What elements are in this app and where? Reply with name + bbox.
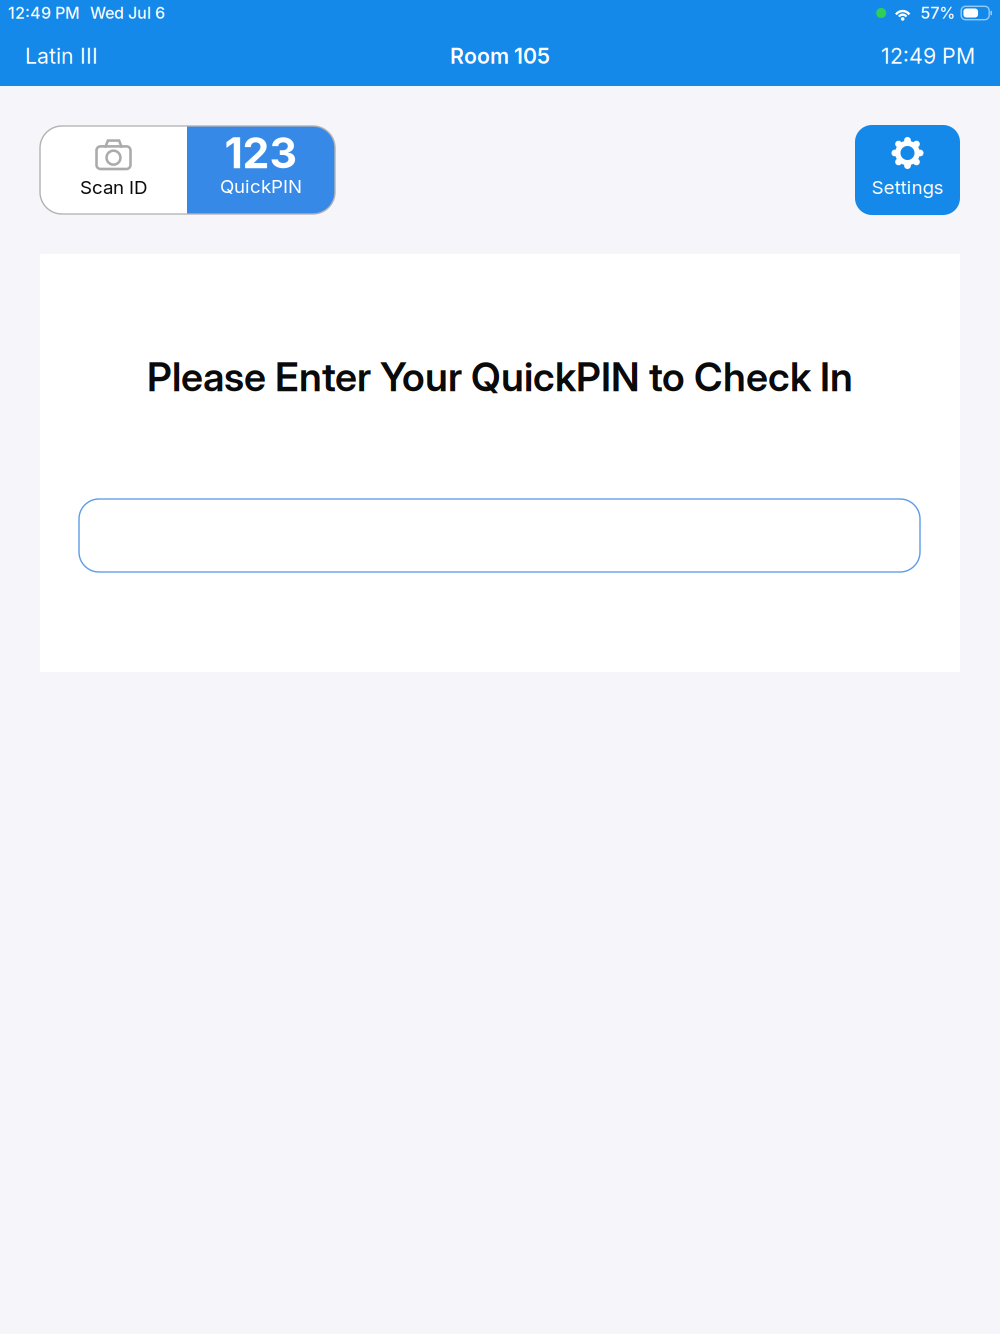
- staticText: 12:49 PM: [8, 3, 80, 23]
- staticText: Scan ID: [80, 176, 147, 199]
- button[interactable]: Settings: [855, 125, 960, 215]
- button[interactable]: QuickPIN entry field: [79, 499, 920, 572]
- button[interactable]: 123: [187, 126, 335, 214]
- staticText: Room 105: [450, 43, 550, 69]
- button[interactable]: Latin III: [25, 35, 98, 77]
- staticText: 123: [224, 127, 297, 179]
- staticText: 57%: [920, 3, 955, 23]
- staticText: Please Enter Your QuickPIN to Check In: [147, 353, 853, 401]
- staticText: Wed Jul 6: [90, 3, 165, 23]
- staticText: QuickPIN: [220, 175, 302, 198]
- button[interactable]: Scan ID: [40, 126, 187, 214]
- staticText: Latin III: [25, 43, 98, 69]
- staticText: 12:49 PM: [881, 43, 975, 69]
- staticText: Settings: [871, 176, 943, 199]
